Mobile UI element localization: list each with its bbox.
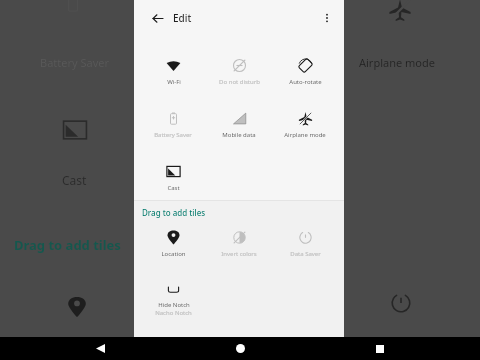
button[interactable]: Do not disturb: [206, 58, 272, 96]
button[interactable]: Mobile data: [206, 111, 272, 149]
staticText: Hide Notch: [158, 301, 190, 309]
button[interactable]: More options: [316, 7, 338, 29]
staticText: Cast: [62, 172, 87, 188]
button[interactable]: Back: [86, 337, 114, 360]
staticText: Data Saver: [290, 250, 321, 258]
staticText: Airplane mode: [359, 55, 435, 70]
staticText: Drag to add tiles: [14, 236, 121, 254]
staticText: Do not disturb: [219, 78, 260, 86]
button[interactable]: Home: [226, 337, 254, 360]
button[interactable]: Data Saver: [272, 230, 338, 268]
button[interactable]: Invert colors: [206, 230, 272, 268]
staticText: Auto-rotate: [289, 78, 322, 86]
button[interactable]: Battery Saver: [140, 111, 206, 149]
button[interactable]: Airplane mode: [272, 111, 338, 149]
button[interactable]: Location: [140, 230, 206, 268]
staticText: Battery Saver: [40, 55, 110, 70]
staticText: Nacho Notch: [155, 309, 192, 317]
staticText: Wi-Fi: [167, 78, 181, 86]
staticText: Invert colors: [221, 250, 257, 258]
staticText: Drag to add tiles: [142, 207, 206, 218]
button[interactable]: Auto-rotate: [272, 58, 338, 96]
button[interactable]: Recents: [366, 337, 394, 360]
staticText: Airplane mode: [284, 131, 326, 139]
staticText: Mobile data: [222, 131, 256, 139]
button[interactable]: Wi-Fi: [140, 58, 206, 96]
staticText: Location: [161, 250, 186, 258]
staticText: Battery Saver: [154, 131, 192, 139]
button[interactable]: Hide Notch: [140, 282, 206, 326]
staticText: Edit: [173, 11, 192, 25]
button[interactable]: Back: [146, 7, 168, 29]
staticText: Cast: [167, 184, 180, 192]
button[interactable]: Cast: [140, 164, 206, 202]
